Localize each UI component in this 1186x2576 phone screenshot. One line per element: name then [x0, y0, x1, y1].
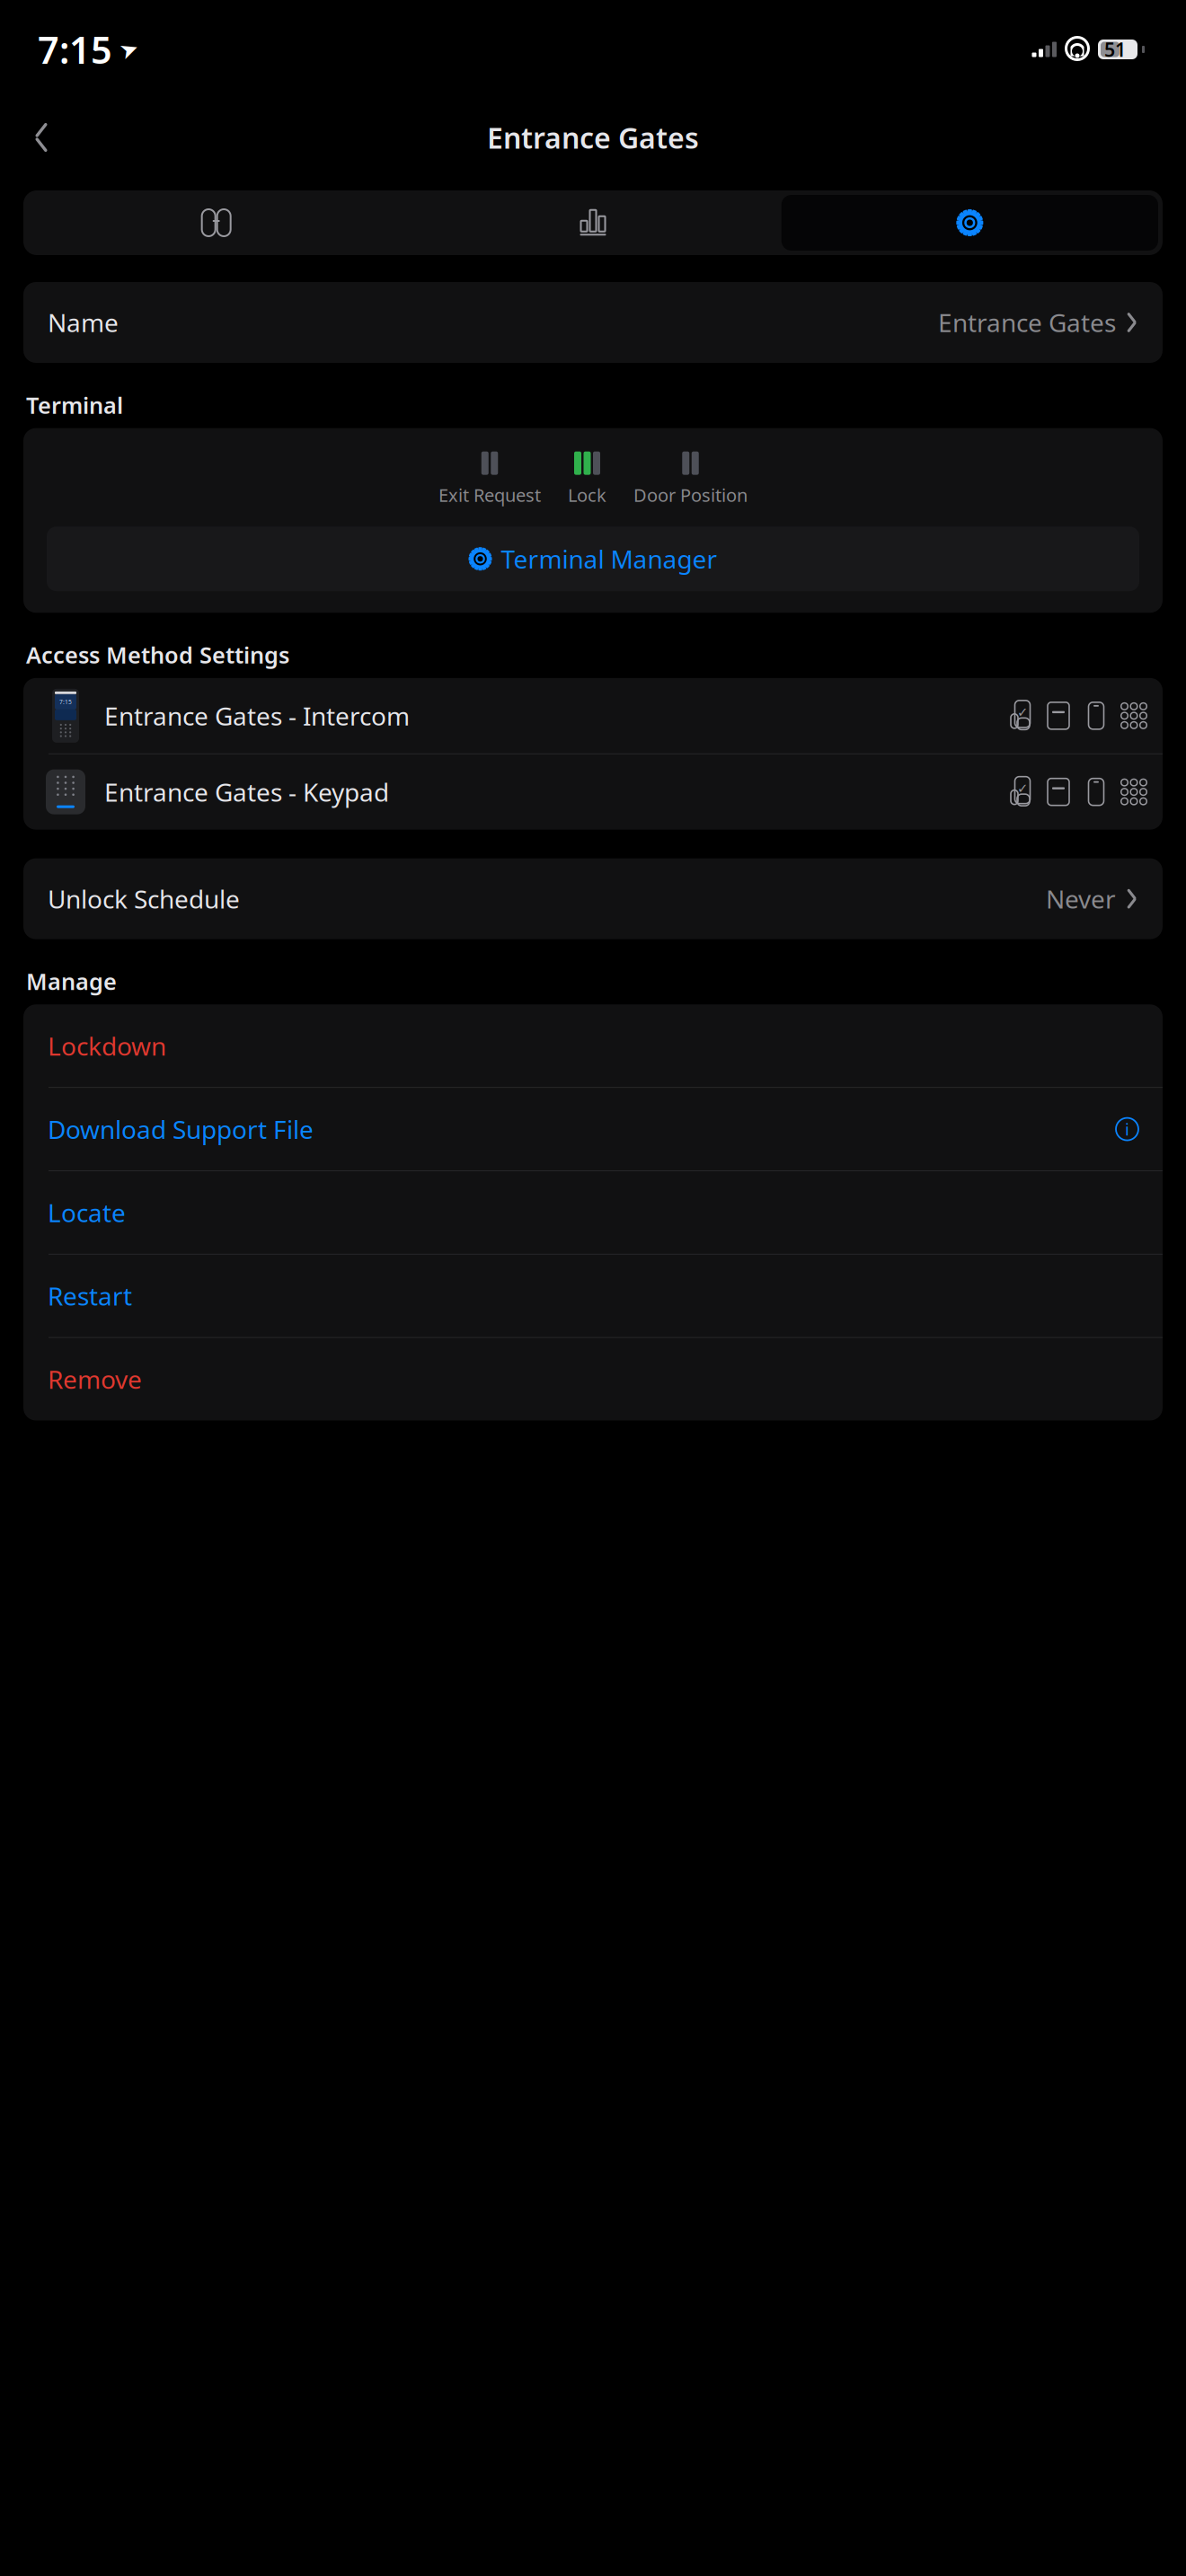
button[interactable]: Activity [405, 195, 781, 251]
staticText: ✓ [1017, 705, 1028, 720]
staticText: Locate [48, 1196, 126, 1229]
staticText: Entrance Gates - Keypad [104, 775, 389, 809]
staticText: 7:15 [38, 25, 112, 74]
staticText: Remove [48, 1362, 142, 1396]
staticText: Terminal Manager [501, 542, 717, 576]
staticText: Restart [48, 1279, 132, 1313]
staticText: Lock [568, 483, 606, 507]
staticText: Access Method Settings [26, 640, 289, 670]
staticText: Download Support File [48, 1112, 314, 1146]
button[interactable]: Settings [781, 195, 1158, 251]
button[interactable]: Name [23, 282, 1163, 363]
button[interactable]: Remove [23, 1338, 1163, 1420]
staticText: Entrance Gates - Intercom [104, 699, 410, 732]
staticText: Manage [26, 966, 117, 996]
staticText: Lockdown [48, 1029, 166, 1062]
staticText: Never [1046, 882, 1116, 916]
button[interactable]: Unlock Schedule [23, 858, 1163, 939]
staticText: i [1125, 1118, 1129, 1140]
staticText: ➤ [119, 36, 138, 62]
staticText: Entrance Gates [938, 306, 1116, 339]
staticText: Door Position [633, 483, 748, 507]
button[interactable]: Terminal Manager [47, 527, 1139, 591]
button[interactable]: Entrance Gates - Keypad [23, 754, 1163, 830]
staticText: ✓ [1017, 781, 1028, 796]
button[interactable]: Download Support File [23, 1088, 1163, 1170]
button[interactable]: Live view [28, 195, 405, 251]
button[interactable]: Lockdown [23, 1004, 1163, 1087]
button[interactable]: Restart [23, 1254, 1163, 1337]
staticText: 51 [1104, 37, 1126, 62]
button[interactable]: Locate [23, 1171, 1163, 1254]
staticText: Name [48, 306, 119, 339]
button[interactable]: 7:15 [23, 678, 1163, 753]
button[interactable]: Back [16, 113, 66, 162]
staticText: Terminal [26, 390, 123, 420]
staticText: Exit Request [438, 483, 541, 507]
staticText: Unlock Schedule [48, 882, 240, 916]
staticText: 7:15 [59, 698, 72, 706]
staticText: Entrance Gates [487, 118, 699, 157]
